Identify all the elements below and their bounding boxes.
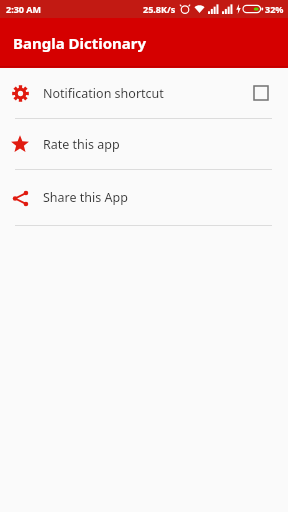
staticText: Rate this app — [43, 136, 120, 153]
button[interactable]: Notification shortcut checkbox — [254, 86, 268, 100]
other: Share this App — [12, 190, 29, 207]
button[interactable]: Notification shortcut — [0, 68, 288, 118]
other: Rate this app — [11, 135, 29, 153]
other: Notification shortcut — [12, 85, 29, 102]
staticText: 2:30 AM — [6, 3, 42, 15]
button[interactable]: Rate this app — [0, 119, 288, 169]
staticText: Share this App — [43, 189, 128, 206]
staticText: Notification shortcut — [43, 85, 164, 102]
staticText: 32% — [265, 3, 284, 15]
staticText: 25.8K/s — [143, 3, 176, 15]
staticText: Bangla Dictionary — [13, 33, 147, 53]
button[interactable]: Share this App — [0, 170, 288, 225]
